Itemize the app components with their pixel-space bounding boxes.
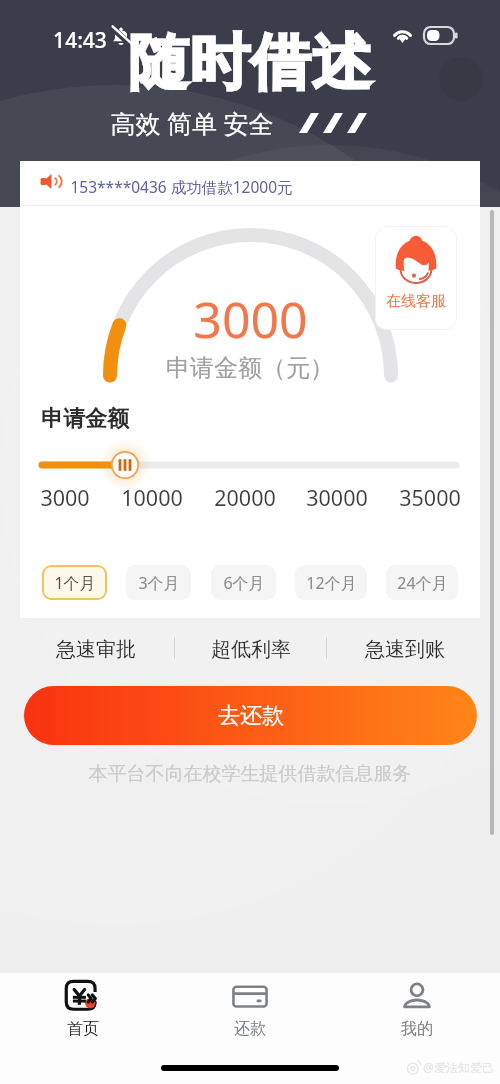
button[interactable]: 我的 — [333, 973, 500, 1039]
button[interactable]: 急速审批 — [36, 637, 156, 662]
staticText: 6个月 — [223, 572, 265, 594]
button[interactable]: 6个月 — [211, 565, 276, 600]
button[interactable]: 首页 — [0, 973, 166, 1039]
staticText: 20000 — [214, 483, 276, 512]
button[interactable]: 超低利率 — [191, 637, 311, 662]
staticText: 急速到账 — [365, 637, 445, 662]
staticText: 14:43 — [53, 26, 107, 55]
staticText: 随时借述 — [128, 25, 372, 101]
staticText: 急速审批 — [56, 637, 136, 662]
staticText: 153****0436 成功借款12000元 — [70, 176, 293, 197]
button[interactable]: 去还款 — [24, 686, 477, 745]
staticText: 35000 — [399, 483, 461, 512]
staticText: 高效 简单 安全 — [110, 106, 274, 140]
staticText: 12个月 — [306, 572, 357, 594]
staticText: 去还款 — [218, 702, 284, 730]
button[interactable]: 急速到账 — [345, 637, 465, 662]
staticText: 10000 — [121, 483, 183, 512]
staticText: 24个月 — [397, 572, 448, 594]
staticText: 1个月 — [54, 572, 96, 594]
button[interactable]: 12个月 — [295, 565, 367, 600]
staticText: 3个月 — [138, 572, 180, 594]
button[interactable]: 还款 — [166, 973, 333, 1039]
staticText: 还款 — [234, 1019, 266, 1039]
staticText: 在线客服 — [386, 292, 446, 311]
button[interactable]: 1个月 — [42, 565, 107, 600]
button[interactable]: 在线客服 — [375, 226, 457, 330]
button[interactable]: 24个月 — [386, 565, 458, 600]
staticText: 3000 — [40, 483, 90, 512]
staticText: 超低利率 — [211, 637, 291, 662]
staticText: 30000 — [306, 483, 368, 512]
staticText: 申请金额（元） — [166, 353, 334, 383]
staticText: 申请金额 — [41, 405, 129, 433]
staticText: 首页 — [67, 1019, 99, 1039]
button[interactable]: 3个月 — [126, 565, 191, 600]
staticText: 3000 — [193, 285, 308, 353]
staticText: 我的 — [401, 1019, 433, 1039]
staticText: 本平台不向在校学生提供借款信息服务 — [0, 762, 500, 786]
staticText: @爱法知爱己 — [423, 1059, 494, 1075]
